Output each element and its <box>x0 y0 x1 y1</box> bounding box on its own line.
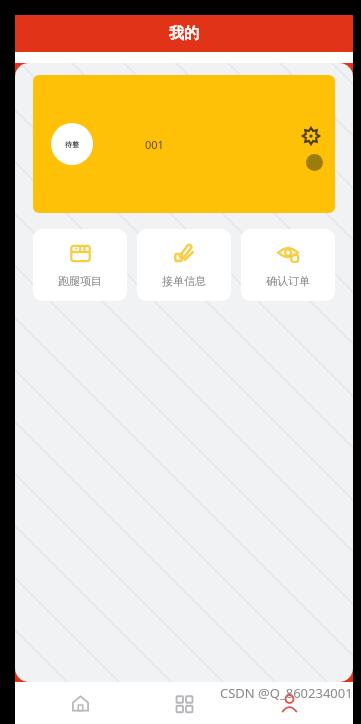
button[interactable]: 接单信息 <box>137 229 231 301</box>
button[interactable]: 待整 <box>33 75 335 213</box>
button[interactable]: 确认订单 <box>241 229 335 301</box>
staticText: 001 <box>145 137 164 152</box>
staticText: 我的 <box>169 24 199 43</box>
staticText: 跑腿项目 <box>58 274 102 288</box>
button[interactable]: Settings <box>299 124 323 148</box>
staticText: CSDN @Q_860234001 <box>220 684 353 702</box>
button[interactable]: Profile <box>249 682 329 724</box>
button[interactable]: Categories <box>144 682 224 724</box>
button[interactable]: Home <box>40 682 120 724</box>
staticText: 待整 <box>65 140 79 149</box>
staticText: 确认订单 <box>266 274 310 288</box>
staticText: 接单信息 <box>162 274 206 288</box>
button[interactable]: 跑腿项目 <box>33 229 127 301</box>
